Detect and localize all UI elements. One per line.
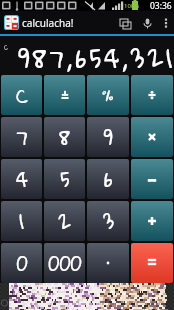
- button[interactable]: 3: [87, 201, 129, 241]
- staticText: 100%: [124, 2, 140, 10]
- staticText: 4: [16, 160, 28, 198]
- staticText: 000: [48, 244, 82, 282]
- staticText: 987,654,321: [18, 34, 174, 73]
- staticText: c: [4, 37, 9, 55]
- button[interactable]: 5: [44, 159, 85, 199]
- button[interactable]: 7: [1, 117, 42, 157]
- staticText: 3: [103, 202, 114, 240]
- staticText: 8: [59, 118, 70, 156]
- button[interactable]: multiply: [131, 117, 173, 157]
- button[interactable]: plusminus: [44, 75, 85, 115]
- button[interactable]: 2: [44, 201, 85, 241]
- button[interactable]: 0: [1, 243, 42, 283]
- staticText: calculacha!: [22, 16, 74, 30]
- staticText: 6: [104, 160, 113, 198]
- button[interactable]: equals: [131, 243, 173, 283]
- button[interactable]: 6: [87, 159, 129, 199]
- button[interactable]: Copy result: [114, 12, 136, 34]
- button[interactable]: dot: [87, 243, 129, 283]
- button[interactable]: 8: [44, 117, 85, 157]
- staticText: 2: [58, 202, 71, 240]
- staticText: 1: [19, 202, 24, 240]
- button[interactable]: plus: [131, 201, 173, 241]
- button[interactable]: 9: [87, 117, 129, 157]
- staticText: %: [102, 80, 114, 110]
- staticText: 5: [60, 160, 70, 198]
- staticText: 0: [16, 244, 28, 282]
- button[interactable]: 000: [44, 243, 85, 283]
- button[interactable]: %: [87, 75, 129, 115]
- button[interactable]: Voice input: [136, 12, 158, 34]
- button[interactable]: divide: [131, 75, 173, 115]
- staticText: 7: [16, 118, 28, 156]
- button[interactable]: Advertisement: [0, 283, 174, 310]
- button[interactable]: minus: [131, 159, 173, 199]
- staticText: 03:36: [150, 0, 172, 11]
- button[interactable]: 4: [1, 159, 42, 199]
- staticText: 9: [103, 118, 113, 156]
- button[interactable]: 1: [1, 201, 42, 241]
- button[interactable]: More options: [158, 15, 174, 31]
- staticText: C: [16, 76, 28, 114]
- button[interactable]: C: [1, 75, 42, 115]
